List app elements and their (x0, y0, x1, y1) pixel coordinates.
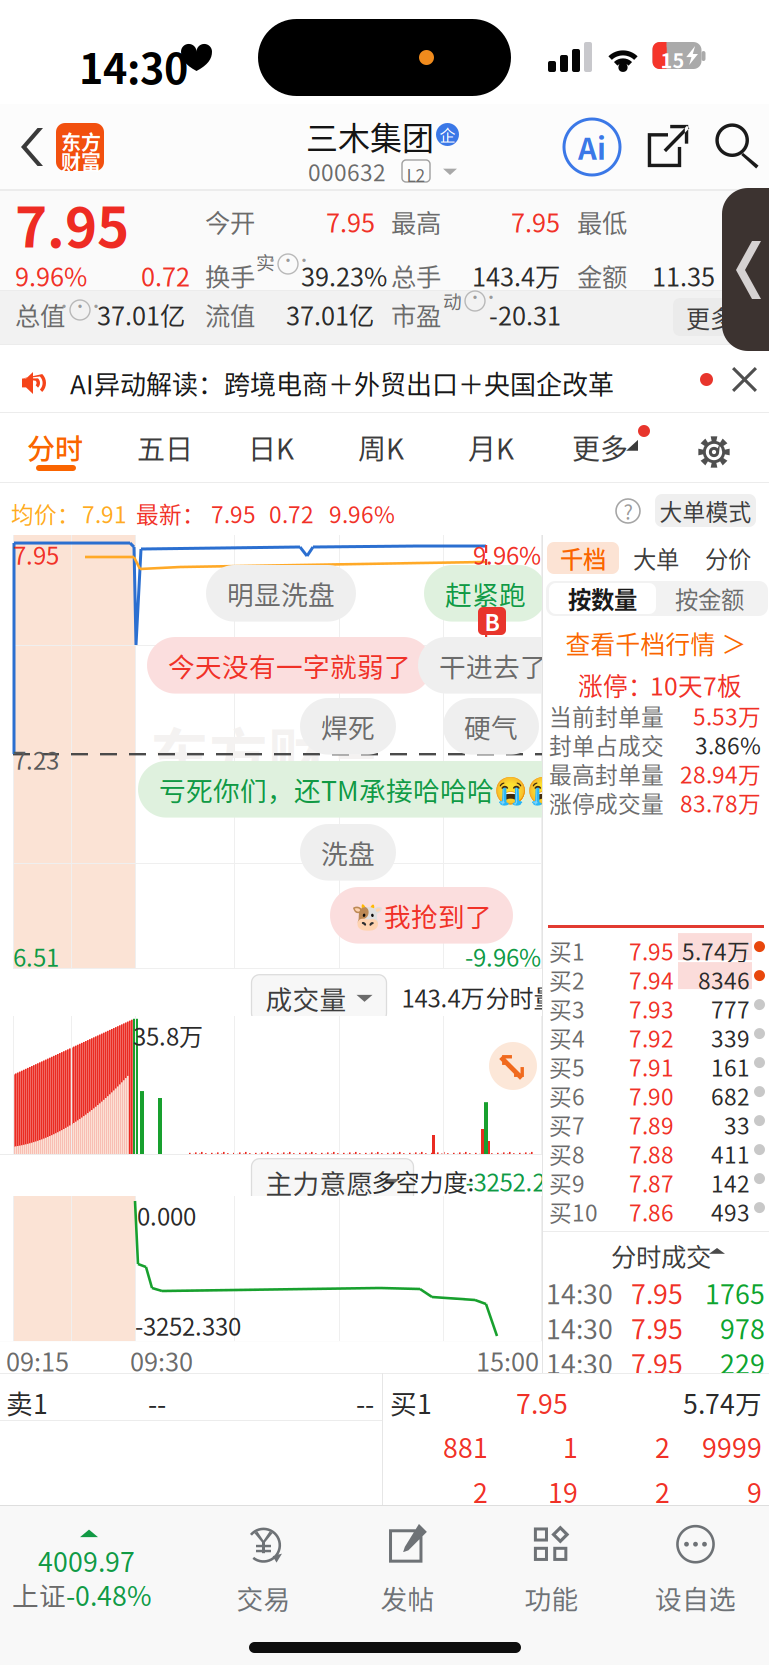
button[interactable]: 日K (220, 413, 330, 483)
staticText: 9.96% (15, 257, 87, 294)
staticText: 7.91 (82, 497, 127, 530)
staticText: 日K (248, 427, 294, 467)
staticText: 7.94 (629, 963, 674, 996)
button[interactable]: 买6 (543, 1079, 769, 1108)
button[interactable]: 买2 (543, 963, 769, 992)
staticText: 7.86 (629, 1195, 674, 1228)
staticText: 总手 (391, 257, 441, 294)
staticText: 明显洗盘 (227, 574, 335, 613)
staticText: 7.95 (631, 1273, 683, 1312)
button[interactable]: 买5 (543, 1050, 769, 1079)
staticText: -3252.277 (465, 1164, 571, 1198)
button[interactable]: 更多 (673, 298, 747, 336)
staticText: 2 (655, 1472, 670, 1511)
staticText: 干进去了! (439, 646, 556, 685)
button[interactable]: 查看千档行情 ＞ (543, 623, 769, 657)
button[interactable]: 分价 (699, 542, 757, 574)
button[interactable]: 展开侧边栏 (722, 188, 769, 351)
staticText: 最低 (577, 203, 627, 240)
staticText: 三木集团 (306, 113, 434, 159)
button[interactable]: 买7 (543, 1108, 769, 1137)
staticText: 4009.97 (38, 1541, 135, 1580)
staticText: 买10 (549, 1195, 598, 1228)
staticText: 买8 (549, 1137, 585, 1170)
staticText: 229 (720, 1343, 765, 1382)
staticText: 大单模式 (659, 494, 751, 527)
staticText: 焊死 (321, 707, 375, 746)
button[interactable]: 按数量 (549, 583, 656, 614)
staticText: L2 (406, 162, 425, 187)
staticText: 封单占成交 (549, 728, 664, 761)
button[interactable]: 设置 (684, 422, 744, 482)
button[interactable]: 搜索 (706, 115, 766, 175)
staticText: 142 (711, 1166, 750, 1199)
staticText: 2 (473, 1472, 488, 1511)
button[interactable]: 五日 (110, 413, 220, 483)
button[interactable]: 交易 (190, 1517, 337, 1622)
staticText: 493 (711, 1195, 750, 1228)
button[interactable]: 按金额 (656, 583, 763, 614)
button[interactable]: 买3 (543, 992, 769, 1021)
staticText: 37.01亿 (97, 296, 185, 333)
staticText: 682 (711, 1079, 750, 1112)
staticText: 买3 (549, 992, 585, 1025)
staticText: 涨停： (578, 667, 653, 703)
button[interactable]: 大单模式 (655, 494, 756, 527)
button[interactable]: 全屏 (489, 1042, 537, 1090)
staticText: 7.88 (629, 1137, 674, 1170)
button[interactable]: 设自选 (622, 1517, 769, 1622)
button[interactable]: 买1 (543, 934, 769, 963)
button[interactable]: 买9 (543, 1166, 769, 1195)
button[interactable]: 月K (440, 413, 550, 483)
staticText: 14:30 (546, 1308, 613, 1347)
button[interactable]: 成交量 (251, 975, 386, 1021)
staticText: 9999 (702, 1427, 762, 1466)
button[interactable]: 返回 (0, 104, 120, 190)
button[interactable]: 买8 (543, 1137, 769, 1166)
staticText: 6.51 (13, 939, 59, 974)
button[interactable]: 千档 (547, 542, 619, 574)
button[interactable]: AI 助手 (564, 119, 620, 175)
button[interactable]: 功能 (478, 1517, 625, 1622)
button[interactable]: 4009.97 (0, 1513, 190, 1623)
staticText: ··· (56, 293, 104, 317)
staticText: 9.96% (329, 497, 395, 530)
button[interactable]: 大单 (627, 542, 685, 574)
staticText: 换手 (205, 257, 255, 294)
staticText: 777 (711, 992, 750, 1025)
button[interactable]: 分时 (0, 413, 110, 483)
staticText: 7.95 (631, 1343, 683, 1382)
button[interactable]: 主力意愿 (251, 1159, 413, 1205)
staticText: 7.95 (13, 537, 59, 572)
staticText: 7.95 (211, 497, 256, 530)
button[interactable]: 关闭 (723, 358, 766, 401)
staticText: B (484, 605, 499, 637)
staticText: ··· (264, 247, 312, 271)
staticText: 0.72 (269, 497, 314, 530)
staticText: -9.96% (465, 939, 541, 974)
staticText: 7.95 (326, 203, 375, 240)
staticText: 周K (358, 427, 404, 467)
button[interactable]: 买4 (543, 1021, 769, 1050)
staticText: 五日 (137, 427, 193, 467)
staticText: 411 (711, 1137, 750, 1170)
button[interactable]: 更多 (550, 413, 670, 483)
button[interactable]: 发帖 (334, 1517, 481, 1622)
button[interactable]: 分享 (638, 115, 698, 177)
staticText: -0.48% (66, 1575, 152, 1614)
staticText: 发帖 (380, 1578, 434, 1617)
staticText: 39.23% (301, 257, 387, 294)
staticText: 买9 (549, 1166, 585, 1199)
button[interactable]: 周K (330, 413, 440, 483)
staticText: 分时 (27, 427, 83, 467)
staticText: 000632 (308, 155, 386, 188)
staticText: 37.01亿 (286, 296, 374, 333)
staticText: 978 (720, 1308, 765, 1347)
button[interactable]: 帮助 (616, 499, 640, 523)
staticText: -- (356, 1383, 374, 1422)
staticText: 买1 (549, 934, 585, 967)
staticText: 7.90 (629, 1079, 674, 1112)
staticText: 14:30 (79, 36, 188, 96)
staticText: 83.78万 (680, 786, 761, 819)
button[interactable]: 买10 (543, 1195, 769, 1224)
